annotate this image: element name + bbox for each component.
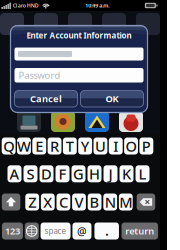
button[interactable]: T xyxy=(63,137,77,154)
staticText: B xyxy=(90,192,100,212)
button[interactable]: Shift xyxy=(2,193,20,210)
button[interactable]: D xyxy=(39,165,53,182)
button[interactable]: OK xyxy=(80,90,143,107)
button[interactable]: N xyxy=(103,193,117,210)
button[interactable]: V xyxy=(72,193,86,210)
button[interactable]: C xyxy=(56,193,70,210)
button[interactable]: J xyxy=(103,165,117,182)
button[interactable]: O xyxy=(124,137,138,154)
button[interactable]: L xyxy=(135,165,149,182)
staticText: E xyxy=(35,136,43,156)
staticText: @ xyxy=(77,224,87,238)
staticText: H xyxy=(89,164,100,184)
button[interactable]: Q xyxy=(2,137,16,154)
staticText: J xyxy=(108,164,112,184)
staticText: U xyxy=(95,136,106,156)
button[interactable]: H xyxy=(87,165,101,182)
staticText: W xyxy=(17,136,31,156)
staticText: Cancel xyxy=(30,93,62,105)
button[interactable]: Next keyboard xyxy=(25,222,39,239)
button[interactable] xyxy=(14,47,143,60)
staticText: Enter Account Information xyxy=(26,30,131,41)
button[interactable]: return xyxy=(121,222,158,239)
button[interactable]: M xyxy=(119,193,133,210)
staticText: F xyxy=(58,164,66,184)
staticText: V xyxy=(74,192,83,212)
staticText: X xyxy=(43,192,52,212)
staticText: Claro HND xyxy=(13,2,39,9)
staticText: A xyxy=(9,164,19,184)
button[interactable]: Y xyxy=(78,137,92,154)
staticText: Password xyxy=(18,69,60,81)
button[interactable]: B xyxy=(88,193,101,210)
button[interactable]: I xyxy=(109,137,123,154)
button[interactable]: . xyxy=(94,222,119,239)
button[interactable]: A xyxy=(7,165,21,182)
staticText: I xyxy=(113,136,118,156)
staticText: O xyxy=(125,136,136,156)
staticText: D xyxy=(41,164,52,184)
staticText: 123 xyxy=(5,225,20,237)
staticText: R xyxy=(50,136,59,156)
staticText: G xyxy=(73,164,84,184)
staticText: Q xyxy=(3,136,14,156)
staticText: 10:49 a.m. xyxy=(85,2,109,9)
button[interactable]: Password xyxy=(14,68,143,82)
staticText: return xyxy=(125,225,154,237)
staticText: N xyxy=(105,192,116,212)
button[interactable]: Cancel xyxy=(14,90,77,107)
staticText: M xyxy=(119,192,132,212)
staticText: P xyxy=(142,136,151,156)
button[interactable]: P xyxy=(139,137,153,154)
staticText: OK xyxy=(105,93,118,105)
staticText: C xyxy=(59,192,68,212)
staticText: K xyxy=(122,164,131,184)
button[interactable]: E xyxy=(32,137,46,154)
button[interactable]: Z xyxy=(25,193,39,210)
button[interactable]: space xyxy=(40,222,70,239)
button[interactable]: X xyxy=(41,193,55,210)
staticText: T xyxy=(66,136,74,156)
button[interactable]: R xyxy=(48,137,61,154)
staticText: Y xyxy=(81,136,90,156)
button[interactable]: K xyxy=(119,165,133,182)
staticText: Z xyxy=(28,192,36,212)
button[interactable]: 123 xyxy=(2,222,23,239)
staticText: . xyxy=(105,223,108,239)
button[interactable]: Delete xyxy=(137,193,155,210)
staticText: S xyxy=(26,164,34,184)
button[interactable]: @ xyxy=(72,222,91,239)
button[interactable]: W xyxy=(17,137,31,154)
staticText: space xyxy=(44,226,66,236)
button[interactable]: S xyxy=(23,165,37,182)
staticText: L xyxy=(138,164,146,184)
button[interactable]: G xyxy=(71,165,85,182)
button[interactable]: F xyxy=(55,165,69,182)
button[interactable]: U xyxy=(93,137,107,154)
